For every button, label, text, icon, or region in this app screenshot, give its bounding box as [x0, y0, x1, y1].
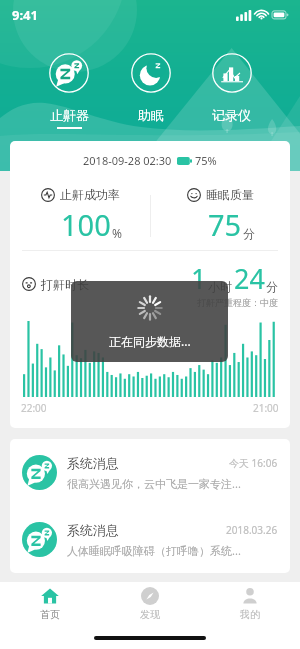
staticText: 75	[208, 205, 242, 244]
staticText: 100	[61, 205, 111, 244]
button[interactable]: 止鼾器	[28, 53, 110, 129]
staticText: 人体睡眠呼吸障碍（打呼噜）系统...	[67, 543, 241, 558]
button[interactable]: 首页	[0, 587, 100, 621]
staticText: 记录仪	[212, 107, 251, 123]
staticText: 小时	[208, 279, 232, 294]
staticText: 分	[243, 226, 255, 241]
staticText: 今天 16:06	[229, 456, 278, 470]
staticText: 75%	[195, 153, 217, 168]
button[interactable]: 助眠	[110, 53, 191, 129]
staticText: 2018-09-28 02:30	[83, 153, 172, 168]
staticText: 睡眠质量	[206, 187, 254, 202]
staticText: 系统消息	[67, 522, 119, 538]
button[interactable]: 我的	[200, 587, 300, 621]
staticText: 9:41	[12, 6, 38, 24]
staticText: 发现	[140, 608, 160, 621]
staticText: %	[112, 225, 122, 241]
staticText: 1	[191, 260, 207, 297]
staticText: 21:00	[253, 401, 279, 415]
staticText: 首页	[40, 608, 60, 621]
button[interactable]: 记录仪	[191, 53, 272, 129]
staticText: 打鼾时长	[41, 277, 89, 292]
staticText: 正在同步数据...	[109, 333, 191, 349]
button[interactable]: 系统消息	[10, 439, 290, 506]
staticText: 止鼾器	[50, 107, 89, 123]
button[interactable]: 系统消息	[10, 506, 290, 573]
staticText: 很高兴遇见你，云中飞是一家专注...	[67, 476, 241, 491]
staticText: 系统消息	[67, 455, 119, 471]
staticText: 22:00	[21, 401, 47, 415]
staticText: 止鼾成功率	[60, 187, 120, 202]
staticText: 助眠	[138, 107, 164, 123]
button[interactable]: 发现	[100, 587, 200, 621]
staticText: 打鼾严重程度：中度	[197, 297, 278, 308]
staticText: 我的	[240, 608, 260, 621]
staticText: 分	[266, 279, 278, 294]
staticText: 24	[234, 260, 265, 297]
staticText: 2018.03.26	[226, 523, 278, 537]
